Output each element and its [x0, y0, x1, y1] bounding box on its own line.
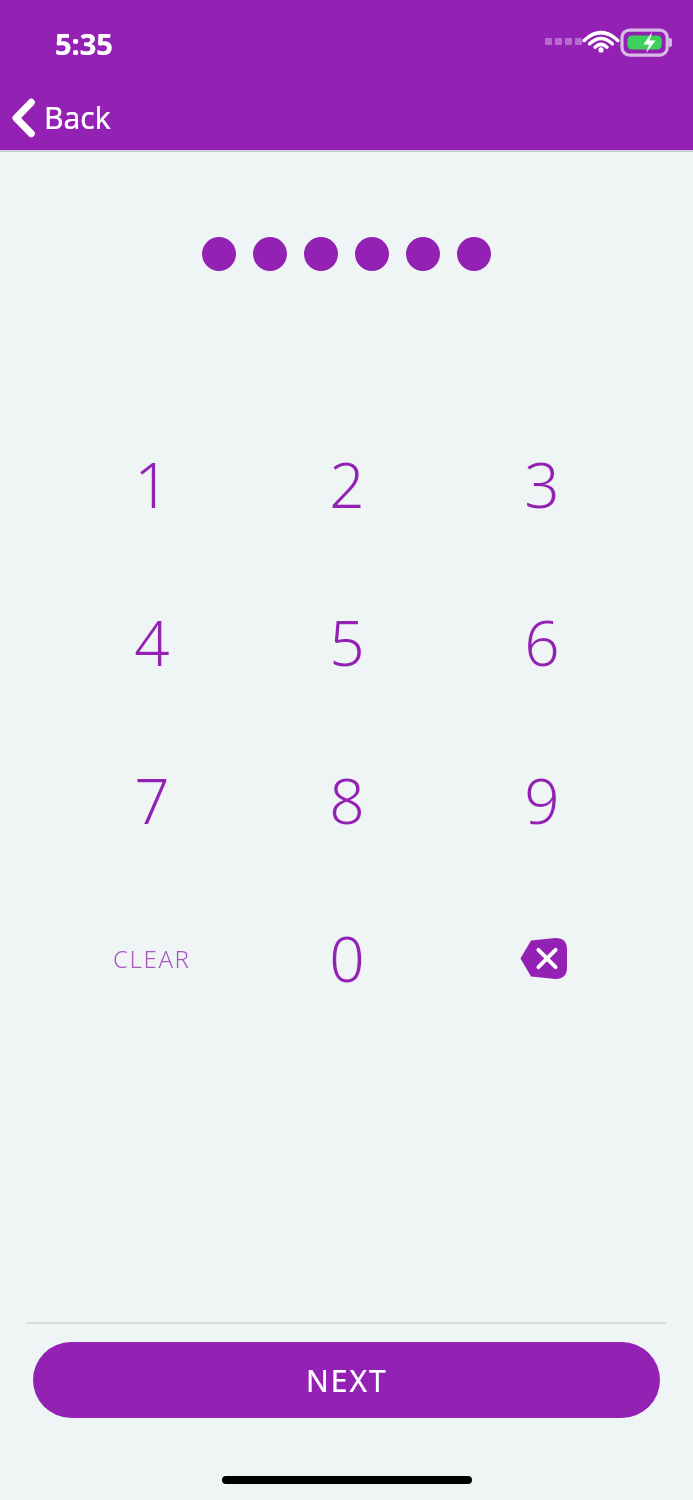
button[interactable]: 4	[54, 563, 249, 721]
button[interactable]: Back	[0, 85, 693, 150]
staticText: 7	[134, 758, 170, 842]
button[interactable]: NEXT	[33, 1342, 660, 1418]
staticText: 5	[329, 600, 365, 684]
button[interactable]: 6	[444, 563, 639, 721]
staticText: NEXT	[306, 1360, 388, 1401]
staticText: 5:35	[55, 24, 113, 63]
staticText: 4	[134, 600, 170, 684]
button[interactable]: CLEAR	[54, 879, 249, 1037]
staticText: Back	[44, 97, 111, 138]
button[interactable]: 5	[249, 563, 444, 721]
staticText: 1	[134, 442, 170, 526]
button[interactable]: 9	[444, 721, 639, 879]
button[interactable]: 8	[249, 721, 444, 879]
staticText: 2	[329, 442, 365, 526]
button[interactable]: 7	[54, 721, 249, 879]
button[interactable]: Backspace	[444, 879, 639, 1037]
staticText: 3	[524, 442, 560, 526]
button[interactable]: 2	[249, 405, 444, 563]
staticText: 9	[524, 758, 560, 842]
staticText: CLEAR	[113, 942, 191, 975]
staticText: 0	[329, 916, 365, 1000]
button[interactable]: 0	[249, 879, 444, 1037]
button[interactable]: 1	[54, 405, 249, 563]
button[interactable]: 3	[444, 405, 639, 563]
staticText: 8	[329, 758, 365, 842]
staticText: 6	[524, 600, 560, 684]
